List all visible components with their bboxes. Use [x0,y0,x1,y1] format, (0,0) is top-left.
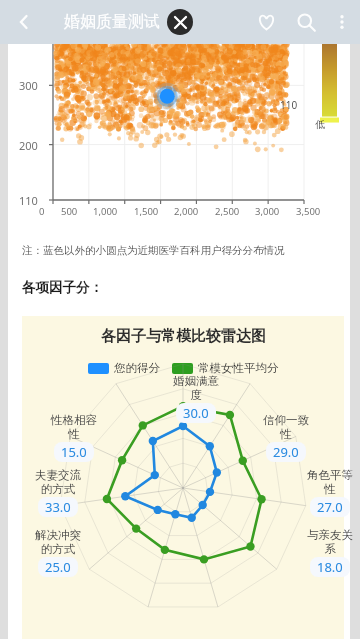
staticText: 注：蓝色以外的小圆点为近期医学百科用户得分分布情况 [22,244,285,257]
staticText: 33.0 [45,498,71,516]
staticText: 解决冲突 的方式 [35,528,81,557]
staticText: 角色平等 性 [307,468,353,497]
staticText: 信仰一致 性 [263,413,309,442]
staticText: 2,500 [215,205,240,218]
staticText: 各因子与常模比较雷达图 [101,327,266,346]
button[interactable]: Close [167,9,193,35]
button[interactable]: More options [326,6,358,38]
staticText: 与亲友关 系 [307,528,353,557]
staticText: 夫妻交流 的方式 [35,468,81,497]
staticText: 性格相容 性 [51,413,97,442]
staticText: 110 [280,98,298,112]
staticText: 30.0 [183,404,209,422]
staticText: 18.0 [317,558,343,576]
staticText: 300 [19,78,38,93]
staticText: 25.0 [45,558,71,576]
staticText: 常模女性平均分 [198,361,279,375]
staticText: 低 [315,118,325,131]
staticText: 27.0 [317,498,343,516]
staticText: 各项因子分： [22,279,103,296]
button[interactable]: Search [286,2,326,42]
staticText: 29.0 [273,443,299,461]
staticText: 婚姻满意 度 [173,374,219,403]
staticText: 婚姻质量测试 [64,12,160,32]
button[interactable]: Favorite [246,2,286,42]
staticText: 1,500 [134,205,159,218]
staticText: 110 [19,193,38,208]
staticText: 15.0 [61,443,87,461]
button[interactable]: Back [6,4,42,40]
staticText: 1,000 [93,205,118,218]
staticText: 您的得分 [114,361,160,375]
staticText: 200 [19,138,38,153]
staticText: 500 [61,205,78,218]
staticText: 0 [39,205,45,218]
staticText: 3,000 [255,205,280,218]
staticText: 2,000 [174,205,199,218]
staticText: 3,500 [296,205,321,218]
